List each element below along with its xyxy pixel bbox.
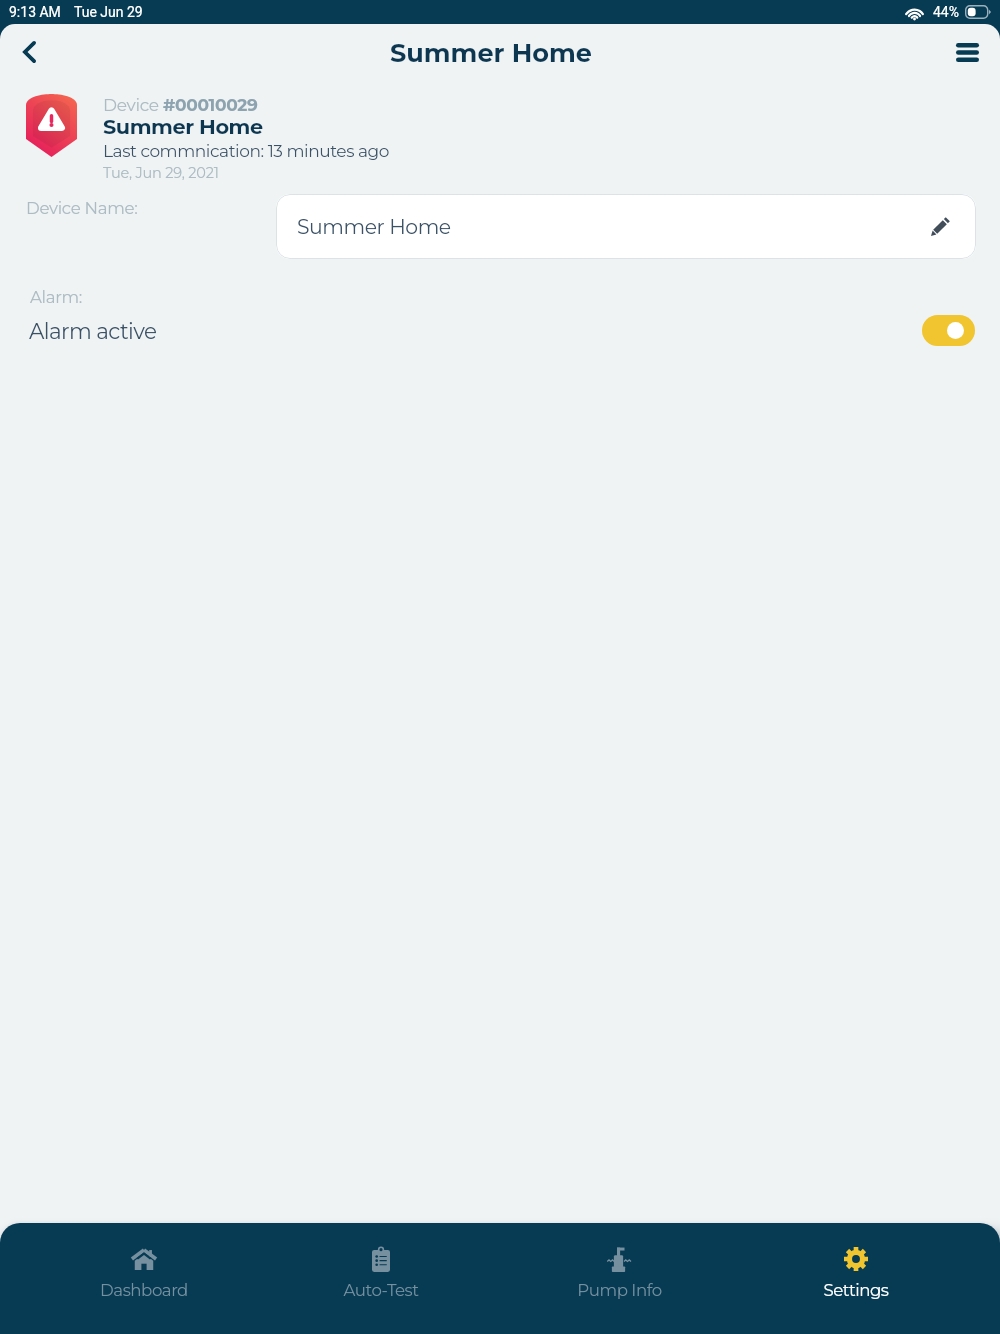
staticText: Last commnication: 13 minutes ago <box>103 141 389 162</box>
staticText: Summer Home <box>297 214 451 239</box>
button[interactable]: Pump Info <box>526 1246 712 1318</box>
staticText: Summer Home <box>390 37 592 68</box>
staticText: Tue Jun 29 <box>74 4 143 20</box>
button[interactable]: Summer Home <box>276 194 976 259</box>
staticText: 44% <box>933 4 959 20</box>
button[interactable]: Auto-Test <box>288 1246 474 1318</box>
button[interactable]: Menu <box>946 31 988 73</box>
staticText: Device #00010029 <box>103 95 258 116</box>
button[interactable]: Settings <box>763 1246 949 1318</box>
button[interactable]: Alarm active toggle <box>922 315 975 346</box>
staticText: Alarm active <box>29 318 157 344</box>
staticText: Dashboard <box>100 1280 188 1300</box>
staticText: Alarm: <box>30 287 83 307</box>
staticText: Auto-Test <box>343 1280 419 1300</box>
staticText: Tue, Jun 29, 2021 <box>103 164 219 182</box>
staticText: Summer Home <box>103 114 263 139</box>
button[interactable]: Back <box>8 31 50 73</box>
staticText: Device Name: <box>26 198 138 218</box>
button[interactable]: Dashboard <box>51 1246 237 1318</box>
staticText: Pump Info <box>577 1280 662 1300</box>
staticText: 9:13 AM <box>9 4 61 20</box>
staticText: Settings <box>823 1280 889 1300</box>
button[interactable]: Edit device name <box>926 213 954 241</box>
